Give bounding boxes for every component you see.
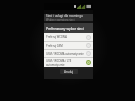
staticText: GSM / WCDMA automatycznie	[46, 52, 86, 56]
staticText: Anuluj	[64, 70, 74, 74]
button[interactable]: Anuluj	[60, 69, 78, 74]
staticText: Preferuj WCDMA	[46, 35, 86, 39]
button[interactable]: Preferuj GSM	[44, 42, 93, 49]
button[interactable]: Preferuj WCDMA	[44, 33, 93, 41]
staticText: Preferuj GSM	[46, 44, 86, 48]
staticText: Preferowany wybor sieci	[46, 26, 93, 30]
staticText: Sieci i uslugi dla roamingu	[46, 14, 83, 18]
staticText: Wybierz operatora sieci	[46, 18, 75, 21]
button[interactable]: GSM / WCDMA / LTE automatycznie	[44, 58, 93, 67]
staticText: GSM / WCDMA / LTE automatycznie	[46, 59, 86, 66]
button[interactable]: GSM / WCDMA automatycznie	[44, 50, 93, 57]
